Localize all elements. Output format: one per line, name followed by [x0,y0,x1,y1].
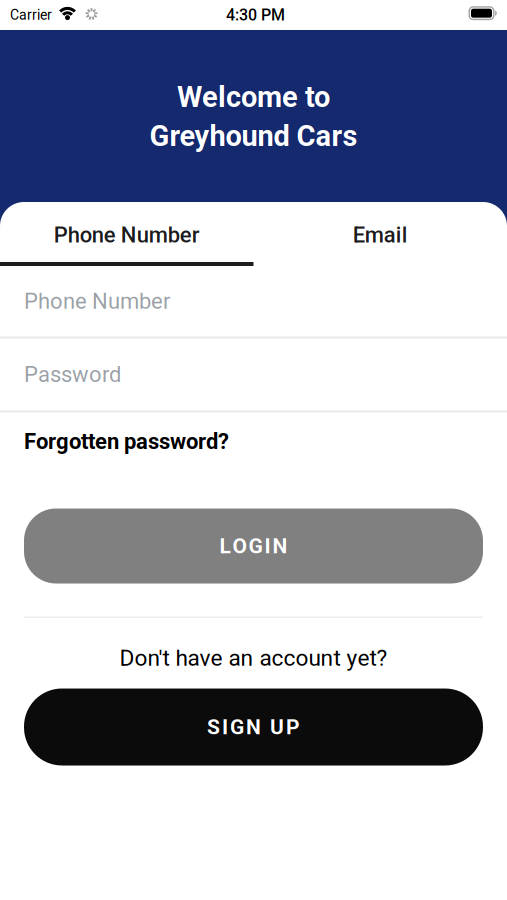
staticText: L O G I N [219,534,287,558]
staticText: Password [24,362,121,387]
staticText: Phone Number [24,288,170,314]
button[interactable]: Phone Number [0,202,253,262]
staticText: Don't have an account yet? [119,645,387,671]
button[interactable]: Forgotten password? [0,412,507,470]
button[interactable]: S I G N U P [24,688,483,765]
button[interactable]: Email [253,202,507,262]
staticText: Phone Number [54,222,200,248]
staticText: 4:30 PM [226,6,285,24]
button[interactable]: Phone Number [0,266,507,336]
button[interactable]: Password [0,338,507,410]
staticText: Email [353,222,408,248]
button[interactable]: L O G I N [24,508,483,583]
staticText: Forgotten password? [24,429,229,454]
staticText: S I G N U P [207,715,300,739]
staticText: Carrier [10,7,52,23]
staticText: Greyhound Cars [149,119,357,153]
staticText: Welcome to [177,80,330,114]
